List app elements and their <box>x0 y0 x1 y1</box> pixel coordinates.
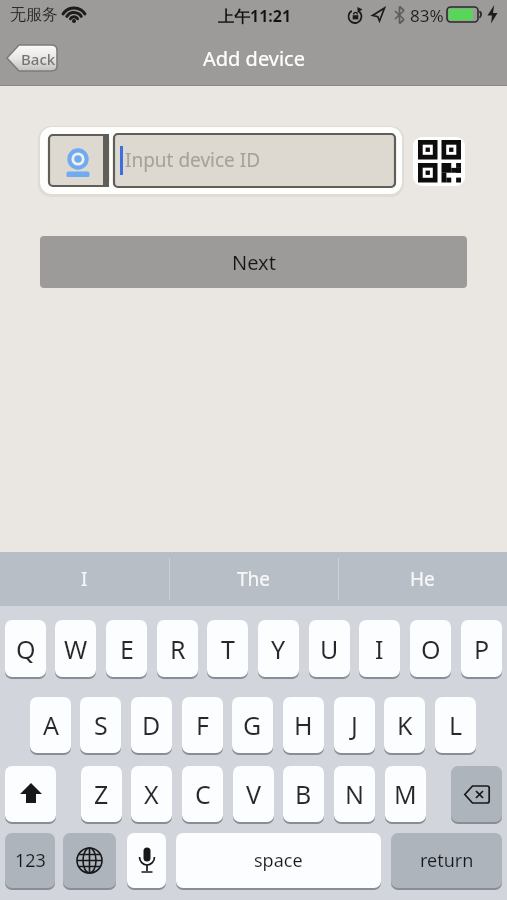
button[interactable] <box>63 833 116 888</box>
button[interactable] <box>127 833 166 888</box>
button[interactable]: B <box>283 766 324 822</box>
button[interactable]: R <box>157 620 198 677</box>
staticText: Back <box>21 49 56 69</box>
button[interactable] <box>451 766 502 822</box>
staticText: W <box>64 632 88 666</box>
button[interactable]: N <box>334 766 375 822</box>
staticText: N <box>345 777 365 811</box>
button[interactable] <box>5 766 56 822</box>
staticText: space <box>254 848 303 873</box>
staticText: C <box>195 777 211 811</box>
button[interactable]: S <box>80 697 121 753</box>
staticText: D <box>142 708 161 742</box>
staticText: return <box>420 848 474 873</box>
button[interactable]: G <box>232 697 273 753</box>
button[interactable]: D <box>131 697 172 753</box>
staticText: K <box>397 708 413 742</box>
staticText: T <box>221 632 235 666</box>
button[interactable]: V <box>233 766 274 822</box>
staticText: Add device <box>203 45 305 72</box>
button[interactable]: I <box>359 620 400 677</box>
staticText: H <box>294 708 313 742</box>
button[interactable]: return <box>391 833 502 888</box>
button[interactable]: Next <box>40 236 467 288</box>
button[interactable]: E <box>106 620 147 677</box>
button[interactable]: M <box>385 766 426 822</box>
staticText: Y <box>271 632 286 666</box>
button[interactable]: O <box>410 620 451 677</box>
staticText: 83% <box>410 4 444 27</box>
staticText: M <box>394 777 417 811</box>
button[interactable]: L <box>435 697 476 753</box>
staticText: X <box>144 777 159 811</box>
staticText: U <box>320 632 339 666</box>
button[interactable]: Z <box>81 766 122 822</box>
staticText: P <box>474 632 490 666</box>
staticText: I <box>81 566 88 592</box>
staticText: O <box>421 632 441 666</box>
staticText: Input device ID <box>125 147 261 173</box>
staticText: L <box>449 708 463 742</box>
staticText: 无服务 <box>10 5 58 25</box>
button[interactable]: K <box>384 697 425 753</box>
staticText: A <box>43 708 59 742</box>
staticText: V <box>246 777 262 811</box>
button[interactable]: Back <box>6 43 58 73</box>
staticText: I <box>375 632 384 666</box>
staticText: 上午11:21 <box>218 5 292 27</box>
button[interactable]: I <box>0 552 169 606</box>
button[interactable]: Input device ID <box>113 133 396 188</box>
staticText: E <box>120 632 134 666</box>
button[interactable]: J <box>334 697 375 753</box>
staticText: B <box>295 777 312 811</box>
button[interactable]: X <box>131 766 172 822</box>
staticText: F <box>196 708 209 742</box>
button[interactable]: 123 <box>5 833 55 888</box>
staticText: 123 <box>15 848 46 873</box>
button[interactable]: U <box>309 620 350 677</box>
button[interactable]: A <box>30 697 71 753</box>
staticText: Z <box>94 777 109 811</box>
staticText: G <box>243 708 262 742</box>
staticText: S <box>94 708 108 742</box>
staticText: He <box>410 566 435 592</box>
button[interactable]: F <box>182 697 223 753</box>
button[interactable]: Q <box>5 620 46 677</box>
staticText: Next <box>232 249 276 276</box>
button[interactable]: Y <box>258 620 299 677</box>
button[interactable]: T <box>207 620 248 677</box>
button[interactable] <box>413 137 465 186</box>
button[interactable]: He <box>338 552 507 606</box>
staticText: J <box>351 708 358 742</box>
staticText: The <box>237 566 271 592</box>
button[interactable]: P <box>461 620 502 677</box>
button[interactable]: The <box>169 552 338 606</box>
button[interactable]: C <box>182 766 223 822</box>
button[interactable]: W <box>55 620 96 677</box>
button[interactable]: H <box>283 697 324 753</box>
staticText: R <box>170 632 186 666</box>
staticText: Q <box>16 632 36 666</box>
button[interactable]: space <box>176 833 381 888</box>
